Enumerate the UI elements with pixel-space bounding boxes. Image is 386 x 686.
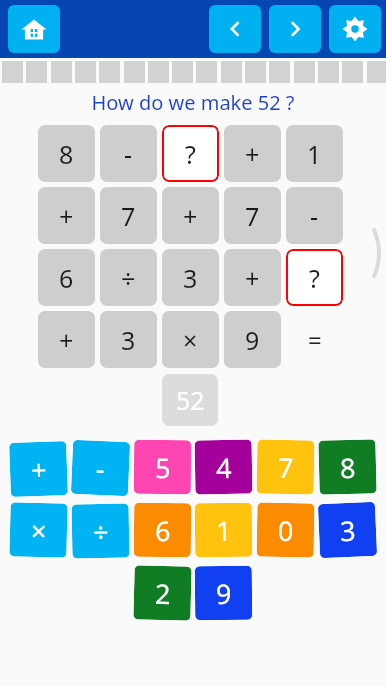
staticText: 6 [155,512,171,549]
staticText: 7 [245,199,260,233]
button[interactable]: 1 [195,503,252,557]
staticText: ? [309,261,320,295]
staticText: ÷ [121,261,136,295]
staticText: ? [185,137,196,171]
staticText: + [183,199,198,233]
staticText: 0 [278,512,294,549]
button[interactable]: + [162,187,219,244]
button[interactable]: + [38,187,95,244]
staticText: 8 [339,449,356,486]
staticText: 8 [59,137,74,171]
staticText: 7 [278,449,294,486]
staticText: + [59,323,74,357]
button[interactable]: + [224,125,281,182]
button[interactable]: + [38,311,95,368]
button[interactable]: 3 [100,311,157,368]
staticText: 2 [154,575,171,612]
button[interactable]: 8 [318,439,377,495]
button[interactable]: 9 [224,311,281,368]
button[interactable]: 0 [256,502,314,557]
button[interactable]: 7 [256,439,314,494]
staticText: = [308,323,322,356]
button[interactable]: 3 [162,249,219,306]
staticText: 6 [59,261,74,295]
button[interactable]: × [162,311,219,368]
button[interactable]: Settings [329,5,381,53]
button[interactable]: 7 [224,187,281,244]
button[interactable]: + [9,441,68,497]
staticText: 5 [155,449,171,486]
staticText: 3 [339,512,357,549]
button[interactable]: 4 [194,439,252,494]
staticText: 52 [176,383,205,417]
staticText: 9 [216,575,232,612]
button[interactable]: 1 [286,125,343,182]
staticText: × [30,512,47,549]
button[interactable]: ? [286,249,343,306]
staticText: 1 [216,512,232,549]
staticText: - [95,450,106,487]
staticText: + [59,199,74,233]
staticText: 9 [245,323,260,357]
staticText: 4 [216,449,232,486]
button[interactable]: - [71,440,130,496]
staticText: 3 [183,261,198,295]
button[interactable]: ÷ [100,249,157,306]
button[interactable]: + [224,249,281,306]
button[interactable]: 6 [38,249,95,306]
button[interactable]: 52 [162,374,218,426]
staticText: × [183,323,198,357]
staticText: + [30,451,48,488]
staticText: 1 [307,137,322,171]
button[interactable]: 6 [134,503,191,557]
staticText: 3 [121,323,136,357]
button[interactable]: - [100,125,157,182]
staticText: 7 [121,199,136,233]
staticText: + [245,137,260,171]
staticText: + [245,261,260,295]
button[interactable]: 3 [318,502,377,558]
button[interactable]: ÷ [71,503,129,558]
button[interactable]: Home [8,5,60,53]
button[interactable]: ? [162,125,219,182]
button[interactable]: - [286,187,343,244]
button[interactable]: Previous [209,5,261,53]
staticText: - [124,137,133,171]
button[interactable]: 8 [38,125,95,182]
button[interactable]: 7 [100,187,157,244]
staticText: - [310,199,319,233]
staticText: How do we make 52 ? [91,89,295,116]
button[interactable]: 9 [195,566,252,620]
button[interactable]: 5 [134,440,191,494]
staticText: ÷ [93,513,109,550]
button[interactable]: 2 [133,565,192,621]
button[interactable]: × [9,502,68,558]
button[interactable]: Next [269,5,321,53]
